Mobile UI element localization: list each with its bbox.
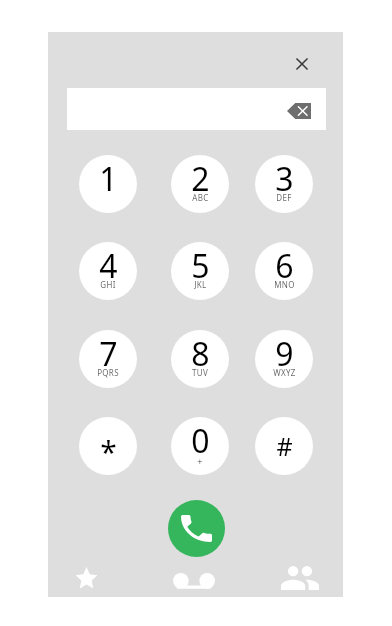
staticText: 5 xyxy=(191,244,210,288)
button[interactable]: Close xyxy=(286,48,318,80)
button[interactable]: 6 xyxy=(255,242,313,300)
staticText: * xyxy=(100,431,117,472)
staticText: 2 xyxy=(191,157,210,201)
staticText: ABC xyxy=(192,192,209,203)
staticText: # xyxy=(276,429,293,463)
button[interactable]: Contacts xyxy=(272,556,328,600)
button[interactable]: 9 xyxy=(255,330,313,388)
staticText: 6 xyxy=(275,244,294,288)
button[interactable]: 5 xyxy=(171,242,229,300)
button[interactable]: Backspace xyxy=(281,95,317,127)
staticText: 9 xyxy=(275,332,294,376)
staticText: PQRS xyxy=(97,367,119,378)
button[interactable]: 8 xyxy=(171,330,229,388)
button[interactable]: Voicemail xyxy=(166,559,222,603)
staticText: 4 xyxy=(99,244,118,288)
button[interactable]: # xyxy=(255,417,313,475)
button[interactable]: 2 xyxy=(171,155,229,213)
staticText: DEF xyxy=(276,192,292,203)
staticText: TUV xyxy=(192,367,208,378)
staticText: WXYZ xyxy=(273,367,296,378)
button[interactable]: Call xyxy=(168,500,225,557)
staticText: + xyxy=(197,455,203,467)
button[interactable]: Favorites xyxy=(58,556,114,600)
button[interactable]: 3 xyxy=(255,155,313,213)
staticText: 1 xyxy=(99,157,118,201)
staticText: GHI xyxy=(100,279,116,290)
staticText: JKL xyxy=(194,279,207,290)
button[interactable] xyxy=(67,88,326,130)
button[interactable]: 0 xyxy=(171,417,229,475)
button[interactable]: 7 xyxy=(79,330,137,388)
button[interactable]: * xyxy=(79,417,137,475)
staticText: 7 xyxy=(99,332,118,376)
button[interactable]: 4 xyxy=(79,242,137,300)
staticText: 3 xyxy=(275,157,294,201)
staticText: 0 xyxy=(191,419,210,463)
staticText: MNO xyxy=(274,279,295,290)
staticText: 8 xyxy=(191,332,210,376)
button[interactable]: 1 xyxy=(79,155,137,213)
